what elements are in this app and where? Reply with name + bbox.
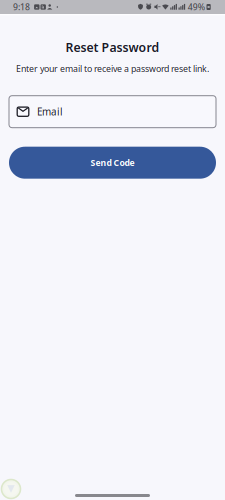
staticText: 9:18 [13,1,30,13]
button[interactable]: Email [9,96,216,128]
staticText: Send Code [90,157,134,169]
button[interactable]: Send Code [9,147,216,179]
staticText: Email [37,105,63,118]
staticText: 49% [188,1,205,13]
staticText: Enter your email to receive a password r… [16,63,209,75]
staticText: Reset Password [65,39,159,56]
